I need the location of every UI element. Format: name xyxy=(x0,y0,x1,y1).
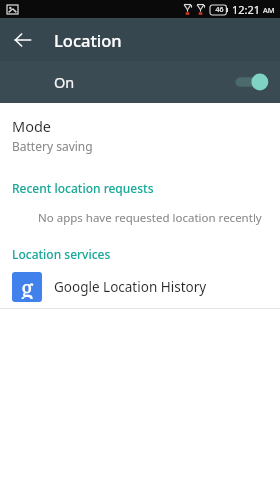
button[interactable]: g xyxy=(0,268,280,308)
staticText: Mode xyxy=(12,116,52,136)
staticText: Battery saving xyxy=(12,138,93,154)
button[interactable]: Navigate up xyxy=(6,23,40,57)
staticText: Recent location requests xyxy=(12,180,154,196)
staticText: 46 xyxy=(215,5,224,15)
staticText: 12:21 xyxy=(232,2,261,17)
staticText: On xyxy=(54,72,75,92)
staticText: Location services xyxy=(12,246,111,262)
button[interactable]: On xyxy=(0,61,280,103)
staticText: No apps have requested location recently xyxy=(38,210,262,226)
button[interactable]: Mode xyxy=(0,104,280,164)
staticText: Location xyxy=(54,29,122,51)
staticText: Google Location History xyxy=(54,278,207,296)
staticText: g xyxy=(21,272,34,299)
staticText: AM xyxy=(263,5,275,15)
